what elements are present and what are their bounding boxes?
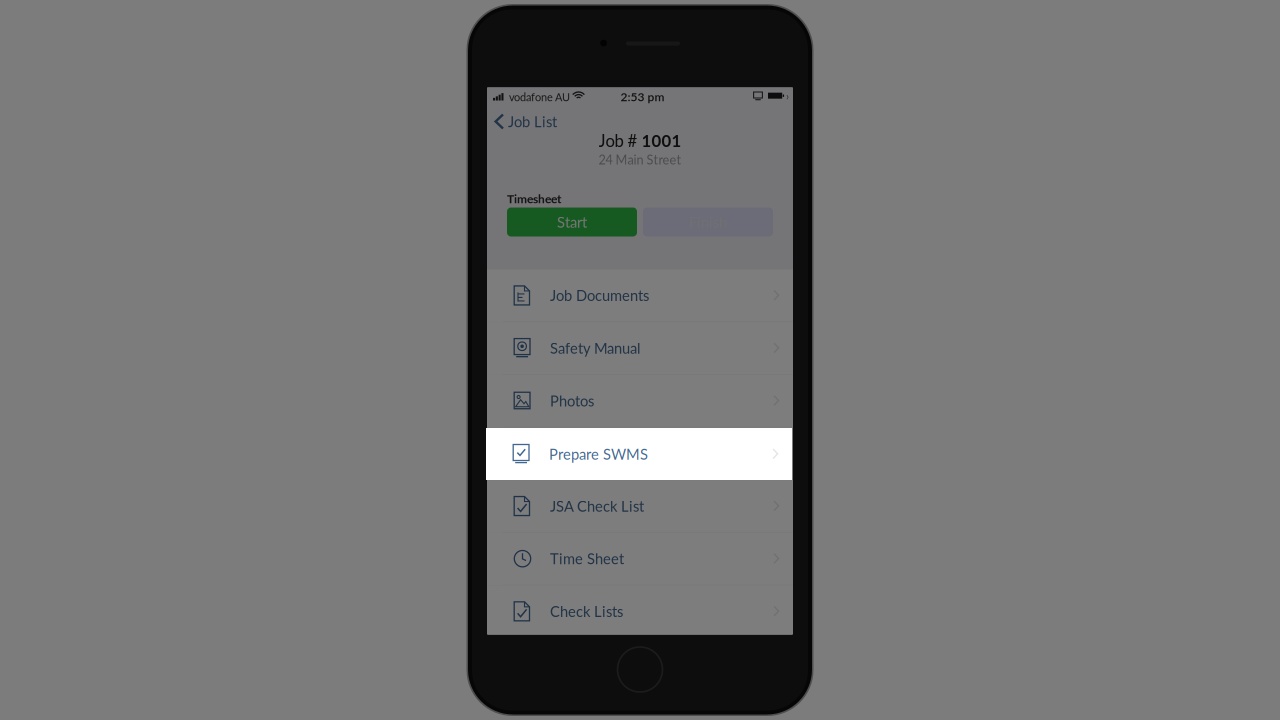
button[interactable]: Start: [507, 207, 637, 236]
staticText: Job #: [598, 130, 641, 150]
button[interactable]: Prepare SWMS: [486, 428, 792, 480]
staticText: Prepare SWMS: [549, 445, 648, 463]
staticText: JSA Check List: [550, 497, 644, 515]
staticText: Safety Manual: [550, 339, 640, 357]
staticText: 2:53 pm: [620, 89, 664, 104]
staticText: Job Documents: [550, 287, 649, 304]
staticText: Check Lists: [550, 602, 623, 620]
staticText: 24 Main Street: [598, 152, 681, 167]
button[interactable]: Prepare SWMS: [487, 427, 793, 480]
button[interactable]: Job List: [487, 109, 565, 133]
staticText: Prepare SWMS: [550, 445, 649, 462]
staticText: Time Sheet: [550, 550, 624, 567]
staticText: vodafone AU: [509, 90, 570, 103]
staticText: Timesheet: [507, 191, 561, 206]
button[interactable]: Safety Manual: [487, 322, 793, 375]
staticText: Start: [557, 213, 587, 231]
button[interactable]: Time Sheet: [487, 533, 793, 585]
button[interactable]: Check Lists: [487, 585, 793, 638]
button[interactable]: Job Documents: [487, 269, 793, 322]
staticText: ›: [786, 90, 789, 102]
staticText: 1001: [641, 130, 681, 150]
staticText: Photos: [550, 392, 594, 409]
button[interactable]: JSA Check List: [487, 480, 793, 533]
button[interactable]: Photos: [487, 375, 793, 427]
staticText: Job List: [508, 113, 557, 130]
